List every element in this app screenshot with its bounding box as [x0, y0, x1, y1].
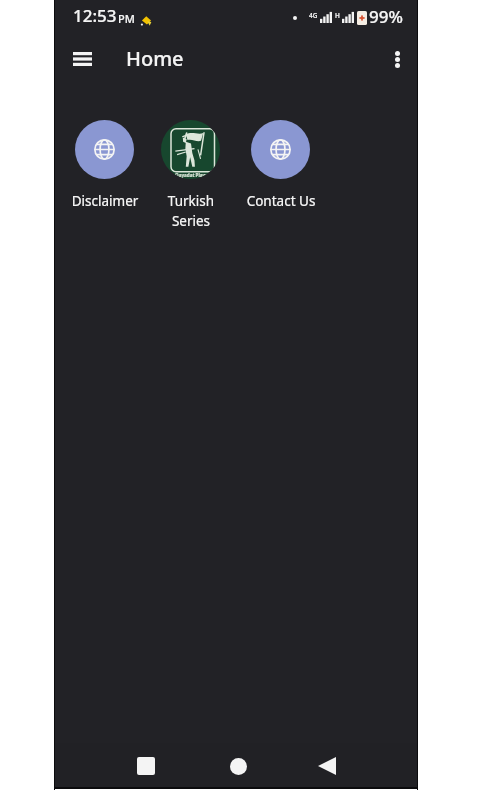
button[interactable]: Qayadat Plaw: [146, 120, 235, 230]
staticText: Contact Us: [244, 192, 318, 210]
staticText: 12:53: [73, 4, 117, 27]
button[interactable]: More options: [377, 39, 417, 79]
button[interactable]: Open navigation menu: [60, 37, 104, 81]
staticText: 4G: [309, 11, 318, 20]
staticText: H: [335, 11, 340, 20]
staticText: Home: [126, 45, 184, 72]
button[interactable]: Home: [214, 743, 262, 789]
button[interactable]: Contact Us: [236, 120, 325, 210]
staticText: Disclaimer: [68, 192, 142, 210]
staticText: Qayadat Plaw: [175, 172, 207, 178]
button[interactable]: Disclaimer: [60, 120, 149, 210]
staticText: PM: [118, 11, 135, 26]
staticText: 99%: [369, 5, 403, 28]
staticText: Turkish Series: [154, 192, 228, 230]
button[interactable]: Recent apps: [122, 743, 170, 789]
button[interactable]: Back: [303, 743, 351, 789]
